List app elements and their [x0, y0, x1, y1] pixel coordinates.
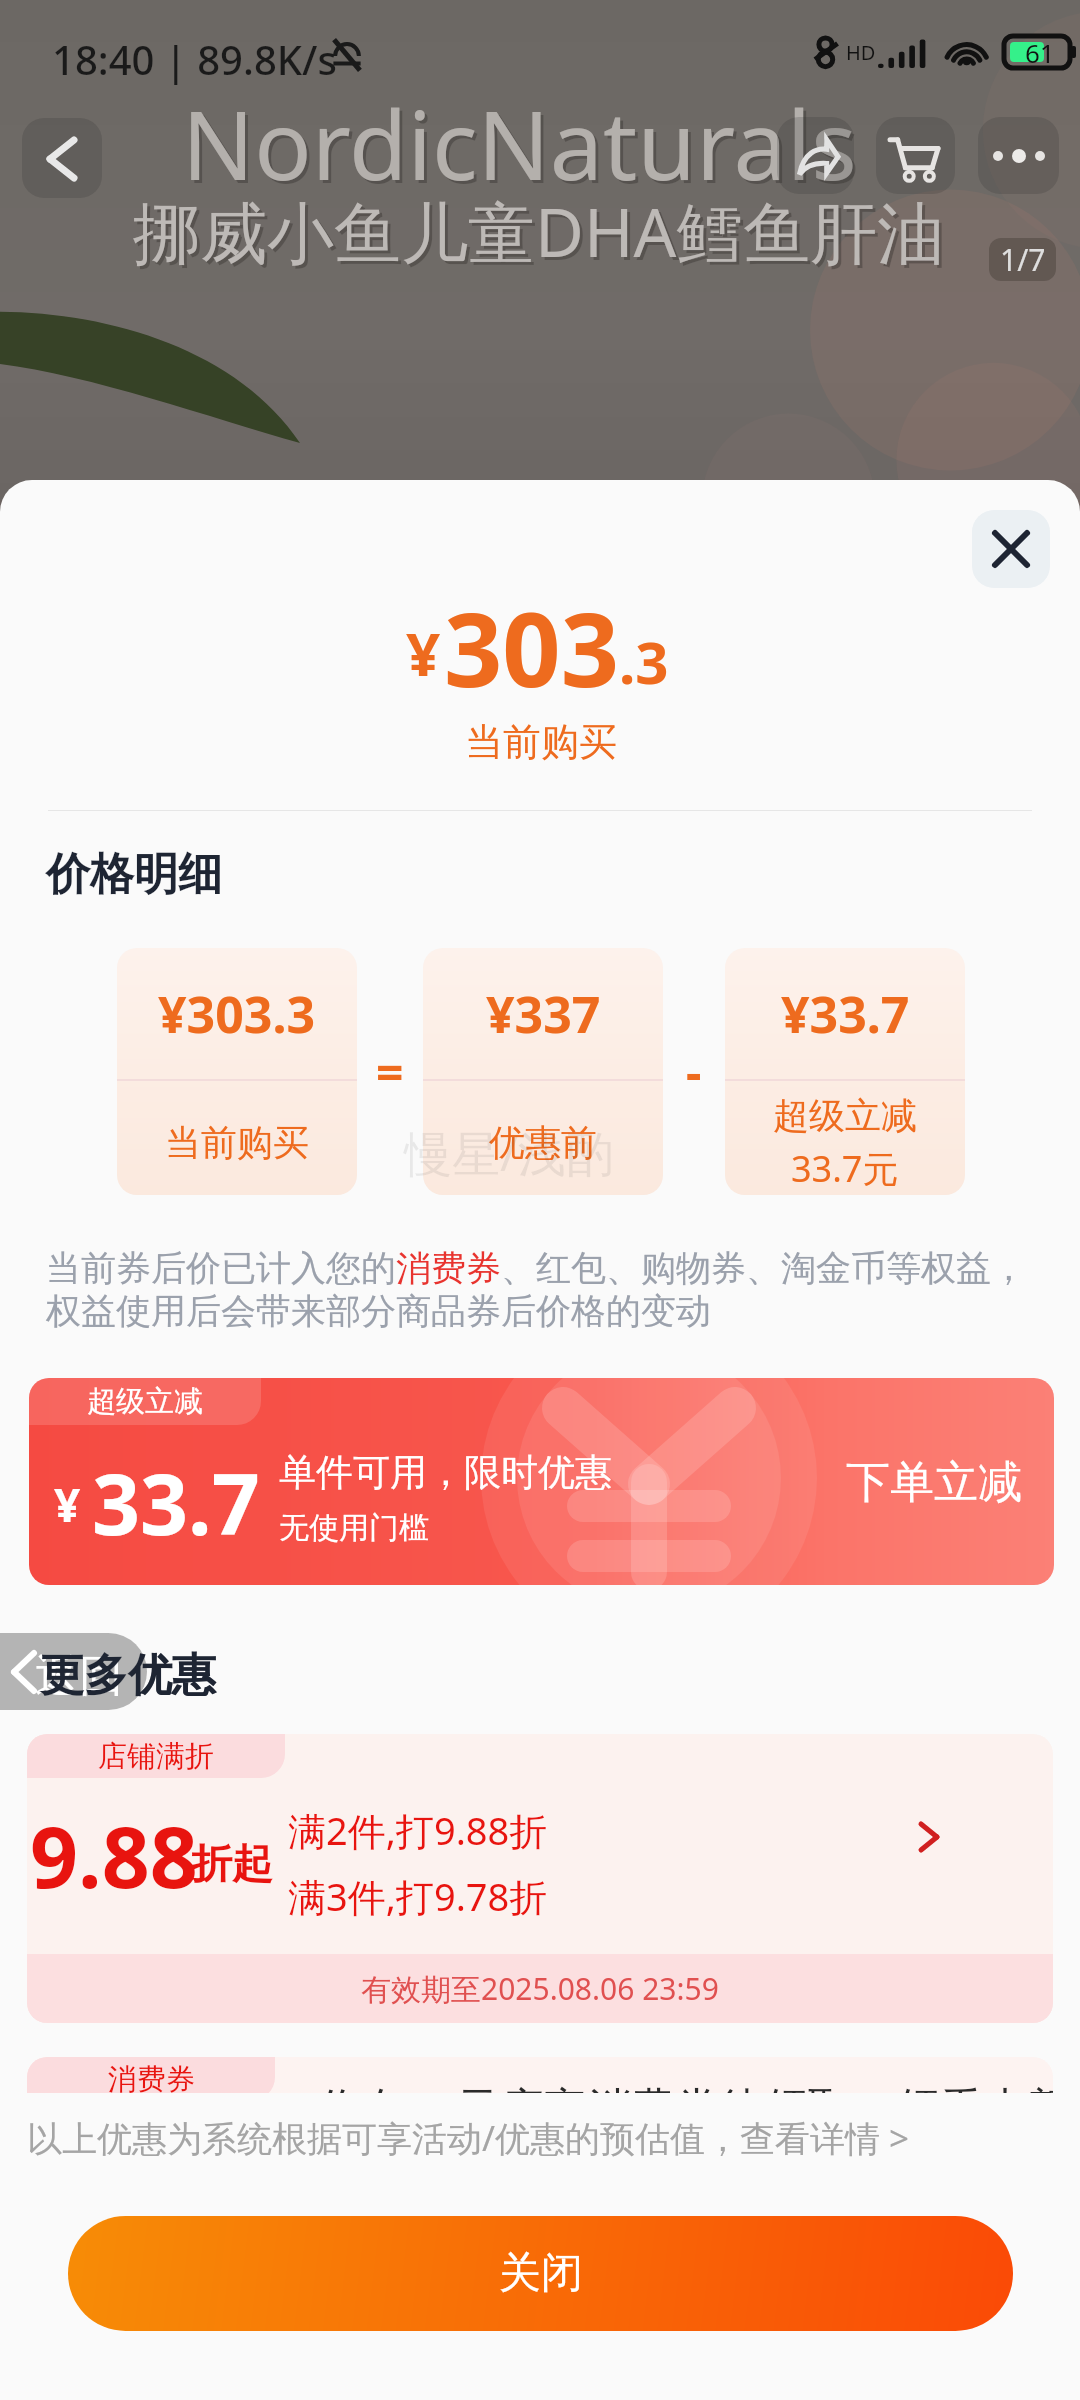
- staticText: 折起: [191, 1839, 273, 1891]
- staticText: .3: [619, 622, 669, 701]
- staticText: 更多优惠: [40, 1648, 216, 1703]
- staticText: 9.88: [30, 1798, 198, 1912]
- staticText: 当前购买: [465, 718, 617, 766]
- staticText: 单件可用，限时优惠: [279, 1449, 612, 1496]
- staticText: ¥303.3: [158, 980, 316, 1048]
- staticText: 你有55元店家消费券待领取，领看大额可: [317, 2077, 1053, 2107]
- staticText: 超级立减: [773, 1093, 917, 1138]
- staticText: 303: [444, 578, 620, 717]
- staticText: 挪威小鱼儿童DHA鳕鱼肝油: [133, 185, 945, 277]
- staticText: 18:40 | 89.8K/s: [52, 32, 337, 86]
- staticText: 挪威小鱼儿童DHA鳕鱼肝油: [136, 188, 948, 280]
- button[interactable]: ¥303.3: [117, 948, 357, 1195]
- button[interactable]: Back: [22, 118, 102, 198]
- staticText: 下单立减: [846, 1455, 1022, 1510]
- staticText: ¥: [406, 612, 441, 694]
- button[interactable]: Back: [0, 1633, 147, 1710]
- button[interactable]: More options: [978, 117, 1059, 194]
- button[interactable]: ¥33.7: [725, 948, 965, 1195]
- staticText: 价格明细: [46, 847, 222, 902]
- staticText: 33.7: [92, 1445, 260, 1559]
- staticText: NordicNaturals: [182, 78, 857, 207]
- staticText: 当前购买: [165, 1120, 309, 1165]
- staticText: 满2件,打9.88折: [288, 1804, 548, 1856]
- staticText: 超级立减: [87, 1383, 203, 1420]
- staticText: 返回: [35, 1649, 123, 1704]
- staticText: -: [686, 1039, 702, 1104]
- button[interactable]: 超级立减: [29, 1378, 1054, 1585]
- staticText: 有效期至2025.08.06 23:59: [361, 1968, 719, 2009]
- button[interactable]: Close: [972, 510, 1050, 588]
- staticText: 关闭: [499, 2247, 583, 2300]
- button[interactable]: Cart: [876, 117, 955, 194]
- staticText: 权益使用后会带来部分商品券后价格的变动: [46, 1289, 711, 1333]
- staticText: 以上优惠为系统根据可享活动/优惠的预估值，查看详情 >: [27, 2114, 910, 2162]
- staticText: ¥33.7: [781, 980, 910, 1048]
- staticText: 店铺满折: [98, 1738, 214, 1775]
- staticText: 消费券: [396, 1246, 501, 1290]
- staticText: 消费券: [108, 2061, 195, 2098]
- staticText: 优惠前: [489, 1120, 597, 1165]
- button[interactable]: Share: [777, 117, 854, 194]
- staticText: 61: [1025, 35, 1055, 70]
- staticText: 慢星/浅酌: [404, 1120, 614, 1186]
- staticText: 满3件,打9.78折: [288, 1870, 548, 1922]
- staticText: HD: [846, 39, 876, 66]
- button[interactable]: 关闭: [68, 2216, 1013, 2331]
- staticText: ¥: [54, 1473, 81, 1536]
- staticText: 33.7元: [791, 1144, 899, 1193]
- staticText: 无使用门槛: [279, 1509, 429, 1547]
- staticText: 更多优惠: [40, 1648, 216, 1703]
- staticText: 当前券后价已计入您的: [46, 1246, 396, 1290]
- staticText: NordicNaturals: [185, 81, 860, 210]
- staticText: 、红包、购物券、淘金币等权益，: [501, 1246, 1026, 1290]
- staticText: ¥337: [486, 980, 601, 1048]
- staticText: =: [376, 1039, 404, 1104]
- button[interactable]: 店铺满折: [27, 1734, 1053, 2023]
- button[interactable]: ¥337: [423, 948, 663, 1195]
- staticText: 1/7: [1000, 239, 1046, 280]
